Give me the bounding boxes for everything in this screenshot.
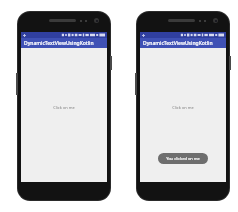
button[interactable]: Click on me (53, 105, 75, 110)
button[interactable]: App bar (21, 38, 107, 48)
button[interactable]: App bar (140, 38, 226, 48)
staticText: DynamicTextViewUsingKotlin (143, 40, 213, 47)
button[interactable]: Click on me (172, 105, 194, 110)
staticText: You clicked on me (166, 156, 200, 161)
button[interactable]: You clicked on me (158, 153, 208, 164)
staticText: DynamicTextViewUsingKotlin (24, 40, 94, 47)
